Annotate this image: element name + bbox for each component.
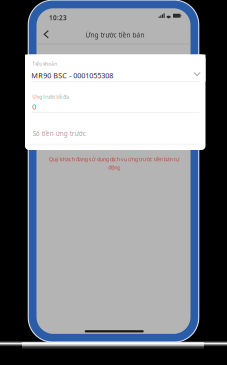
- button[interactable]: Back: [41, 27, 52, 41]
- staticText: Tiểu khoản: [32, 61, 57, 67]
- staticText: động: [108, 163, 120, 171]
- button[interactable]: Tiểu khoản: [25, 54, 205, 81]
- staticText: Quý khách đang sử dụng dịch vụ ứng trước…: [49, 155, 180, 163]
- staticText: Ứng trước tiền bán: [86, 31, 145, 39]
- staticText: Ứng trước tối đa: [32, 94, 69, 100]
- staticText: MR90 BSC - 0001055308: [31, 71, 113, 80]
- staticText: 10:23: [49, 13, 67, 22]
- staticText: 0: [32, 102, 36, 112]
- staticText: Số tiền ứng trước: [33, 129, 86, 138]
